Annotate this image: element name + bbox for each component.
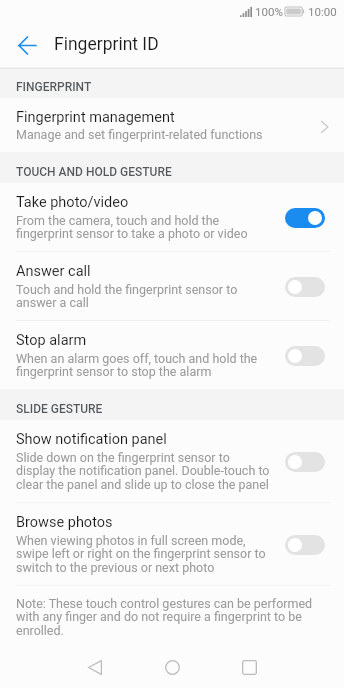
- button[interactable]: Fingerprint management: [0, 98, 344, 152]
- staticText: 10:00: [308, 5, 337, 18]
- staticText: 100%: [255, 5, 283, 18]
- staticText: TOUCH AND HOLD GESTURE: [16, 165, 172, 179]
- staticText: Fingerprint ID: [54, 34, 159, 55]
- button[interactable]: Back: [74, 646, 116, 688]
- button[interactable]: Switch off: [285, 277, 325, 297]
- staticText: Take photo/video: [16, 194, 129, 211]
- button[interactable]: Switch off: [285, 452, 325, 472]
- staticText: Note: These touch control gestures can b…: [16, 596, 313, 638]
- staticText: Answer call: [16, 263, 91, 280]
- staticText: Fingerprint management: [16, 109, 175, 126]
- button[interactable]: Switch off: [285, 346, 325, 366]
- staticText: Manage and set fingerprint-related funct…: [16, 127, 263, 142]
- button[interactable]: Switch on: [285, 208, 325, 228]
- button[interactable]: Take photo/video: [0, 183, 344, 251]
- staticText: When an alarm goes off, touch and hold t…: [16, 351, 258, 379]
- button[interactable]: Recent apps: [228, 646, 270, 688]
- staticText: FINGERPRINT: [16, 80, 92, 94]
- button[interactable]: Home: [151, 646, 193, 688]
- staticText: When viewing photos in full screen mode,…: [16, 533, 266, 575]
- staticText: Stop alarm: [16, 332, 87, 349]
- button[interactable]: Back: [0, 22, 54, 67]
- staticText: Slide down on the fingerprint sensor to …: [16, 450, 270, 492]
- button[interactable]: Browse photos: [0, 503, 344, 585]
- staticText: Show notification panel: [16, 431, 167, 448]
- staticText: Browse photos: [16, 514, 113, 531]
- button[interactable]: Show notification panel: [0, 420, 344, 502]
- button[interactable]: Stop alarm: [0, 321, 344, 389]
- staticText: SLIDE GESTURE: [16, 402, 103, 416]
- button[interactable]: Answer call: [0, 252, 344, 320]
- button[interactable]: Switch off: [285, 535, 325, 555]
- staticText: From the camera, touch and hold the fing…: [16, 213, 248, 241]
- staticText: Touch and hold the fingerprint sensor to…: [16, 282, 238, 310]
